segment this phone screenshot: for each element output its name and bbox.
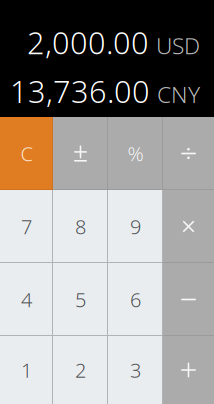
button[interactable]: 2 [53,336,108,404]
button[interactable]: Add [163,336,214,404]
button[interactable]: Subtract [163,263,214,336]
staticText: CNY [157,79,200,109]
staticText: 4 [21,286,32,313]
staticText: 6 [130,286,141,313]
button[interactable]: 4 [0,263,53,336]
button[interactable]: 3 [108,336,163,404]
button[interactable]: 7 [0,190,53,263]
staticText: 5 [75,286,86,313]
button[interactable]: 9 [108,190,163,263]
staticText: 7 [21,213,32,240]
button[interactable]: 8 [53,190,108,263]
staticText: 8 [75,213,86,240]
staticText: 2,000.00 [27,22,149,63]
button[interactable]: 5 [53,263,108,336]
button[interactable]: Multiply [163,190,214,263]
button[interactable]: Percent [108,117,163,190]
staticText: 2 [75,357,86,383]
staticText: % [127,140,143,167]
staticText: 3 [130,357,141,383]
staticText: 1 [21,357,32,383]
staticText: 13,736.00 [10,71,150,111]
button[interactable]: 1 [0,336,53,404]
staticText: 9 [130,213,141,240]
button[interactable]: Divide [163,117,214,190]
staticText: C [20,140,32,167]
button[interactable]: Plus minus [53,117,108,190]
button[interactable]: Clear [0,117,53,190]
staticText: USD [156,30,200,60]
button[interactable]: 6 [108,263,163,336]
